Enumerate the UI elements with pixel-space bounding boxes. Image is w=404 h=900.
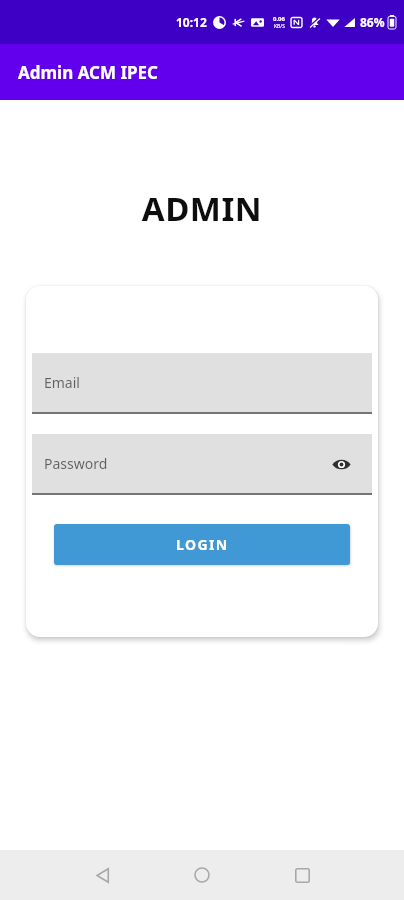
staticText: Email bbox=[44, 373, 80, 392]
button[interactable]: Recent apps bbox=[280, 853, 324, 897]
staticText: Password bbox=[44, 454, 108, 473]
button[interactable]: Email bbox=[32, 353, 372, 414]
staticText: 86% bbox=[360, 14, 385, 30]
button[interactable]: LOGIN bbox=[54, 524, 350, 565]
staticText: Admin ACM IPEC bbox=[18, 61, 159, 84]
button[interactable]: Home bbox=[180, 853, 224, 897]
button[interactable]: Back bbox=[80, 853, 124, 897]
button[interactable]: Show password bbox=[328, 451, 354, 477]
staticText: LOGIN bbox=[176, 535, 229, 554]
staticText: 0.06 bbox=[273, 15, 285, 23]
staticText: 10:12 bbox=[176, 14, 207, 30]
staticText: KB/S bbox=[274, 23, 285, 30]
button[interactable]: Password bbox=[32, 434, 372, 495]
staticText: ADMIN bbox=[0, 186, 404, 231]
